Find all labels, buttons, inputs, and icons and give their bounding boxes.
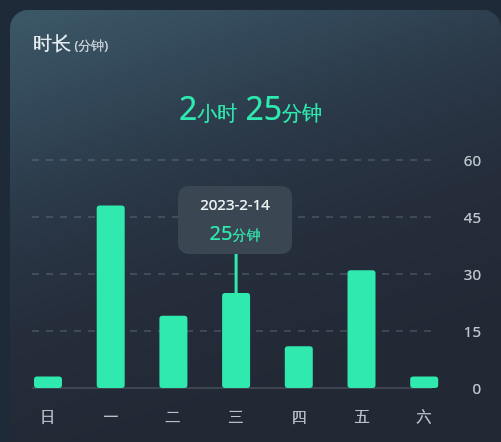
button[interactable]: 四 bbox=[283, 408, 315, 430]
button[interactable]: 时长 (分钟) bbox=[33, 32, 109, 56]
staticText: 2小时 25分钟 bbox=[0, 86, 501, 130]
staticText: 25分钟 bbox=[178, 219, 292, 247]
staticText: 30 bbox=[440, 264, 481, 284]
button[interactable]: 三 bbox=[220, 408, 252, 430]
staticText: 日 bbox=[32, 408, 64, 430]
button[interactable]: 二 bbox=[157, 408, 189, 430]
staticText: 2023-2-14 bbox=[178, 194, 292, 216]
button[interactable]: 一 bbox=[95, 408, 127, 430]
staticText: 五 bbox=[346, 408, 378, 430]
staticText: 二 bbox=[157, 408, 189, 430]
staticText: 时长 (分钟) bbox=[33, 32, 109, 56]
staticText: 60 bbox=[440, 150, 481, 170]
staticText: 15 bbox=[440, 321, 481, 341]
staticText: 四 bbox=[283, 408, 315, 430]
staticText: 一 bbox=[95, 408, 127, 430]
button[interactable]: Selected day detail bbox=[178, 186, 292, 254]
button[interactable] bbox=[10, 10, 501, 442]
staticText: 45 bbox=[440, 207, 481, 227]
button[interactable]: 日 bbox=[32, 408, 64, 430]
staticText: 0 bbox=[440, 378, 481, 398]
staticText: 三 bbox=[220, 408, 252, 430]
staticText: 六 bbox=[408, 408, 440, 430]
button[interactable]: 五 bbox=[346, 408, 378, 430]
button[interactable]: 六 bbox=[408, 408, 440, 430]
